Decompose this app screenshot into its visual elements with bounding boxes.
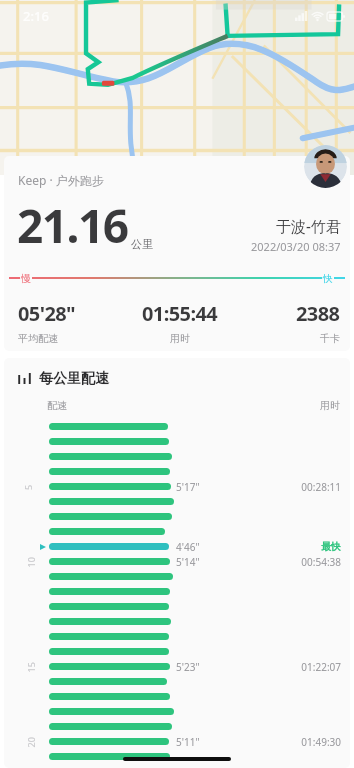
staticText: 01:55:44 [142,300,218,327]
staticText: 5'17" [176,480,200,494]
staticText: 每公里配速 [39,370,109,388]
staticText: 用时 [320,399,340,412]
staticText: 慢 [21,272,31,285]
staticText: 01:49:30 [301,735,341,749]
staticText: 10 [24,556,36,567]
staticText: 01:22:07 [301,660,341,674]
button[interactable]: User avatar [304,145,347,188]
staticText: 用时 [170,332,190,345]
staticText: 20 [24,736,36,747]
staticText: 5'23" [176,660,200,674]
staticText: 快 [323,272,333,285]
staticText: 5 [22,484,34,490]
button[interactable]: Keep · 户外跑步 [4,156,350,351]
staticText: 5'11" [176,735,200,749]
staticText: 于波-竹君 [276,216,341,236]
staticText: 05'28" [18,300,76,327]
staticText: 5'14" [176,555,200,569]
staticText: 千卡 [320,332,340,345]
staticText: Keep · 户外跑步 [18,172,104,188]
staticText: 21.16 [17,194,128,257]
staticText: 2388 [296,300,340,327]
staticText: 最快 [321,540,341,553]
staticText: 15 [24,661,36,672]
staticText: 00:54:38 [301,555,341,569]
button[interactable]: 每公里配速 [4,358,350,768]
staticText: 2:16 [23,7,49,25]
staticText: 2022/03/20 08:37 [251,239,341,254]
staticText: 4'46" [176,540,200,554]
staticText: 00:28:11 [301,480,341,494]
staticText: 平均配速 [18,332,58,345]
staticText: 公里 [131,237,153,251]
staticText: 配速 [47,399,67,412]
